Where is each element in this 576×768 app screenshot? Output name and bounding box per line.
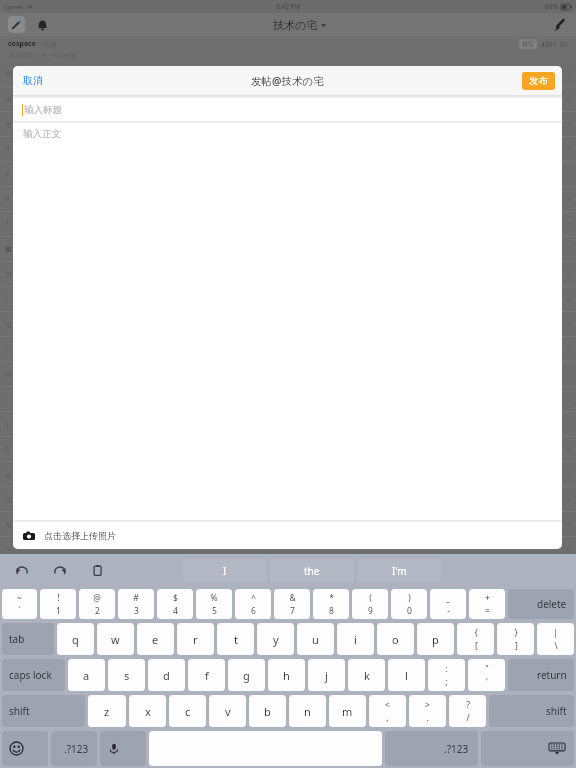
button[interactable]: .?123 [51, 731, 97, 766]
button[interactable]: Dictation [100, 731, 146, 766]
staticText: [ [475, 640, 478, 652]
button[interactable]: g [228, 659, 265, 691]
button[interactable]: .?123 [385, 731, 478, 766]
button[interactable]: d [148, 659, 185, 691]
staticText: " [485, 663, 489, 675]
button[interactable]: _ [430, 589, 466, 619]
staticText: caps lock [9, 668, 52, 682]
button[interactable]: < [369, 695, 406, 727]
button[interactable]: I'm [357, 559, 441, 582]
button[interactable]: Compose [548, 15, 568, 35]
button[interactable]: delete [508, 589, 574, 619]
button[interactable]: 输入标题 [13, 98, 562, 121]
button[interactable]: u [297, 623, 334, 655]
button[interactable]: v [209, 695, 246, 727]
button[interactable]: @ [79, 589, 115, 619]
staticText: v [225, 704, 231, 719]
button[interactable]: $ [157, 589, 193, 619]
staticText: ] [515, 640, 518, 652]
button[interactable]: Undo [12, 561, 32, 581]
button[interactable]: ! [40, 589, 76, 619]
button[interactable]: > [409, 695, 446, 727]
button[interactable]: caps lock [2, 659, 65, 691]
staticText: # [133, 592, 139, 604]
button[interactable]: s [108, 659, 145, 691]
staticText: < [385, 699, 390, 711]
button[interactable]: t [217, 623, 254, 655]
button[interactable]: w [97, 623, 134, 655]
button[interactable]: return [508, 659, 574, 691]
button[interactable]: # [118, 589, 154, 619]
button[interactable]: tab [2, 623, 54, 655]
button[interactable]: Redo [50, 561, 70, 581]
staticText: 66% [545, 2, 558, 11]
staticText: 4 [5, 169, 10, 179]
button[interactable]: n [289, 695, 326, 727]
staticText: ; [445, 676, 448, 688]
button[interactable]: o [377, 623, 414, 655]
button[interactable]: b [249, 695, 286, 727]
button[interactable]: h [268, 659, 305, 691]
button[interactable]: i [337, 623, 374, 655]
button[interactable]: % [196, 589, 232, 619]
button[interactable]: Profile [8, 16, 25, 33]
button[interactable]: shift [2, 695, 85, 727]
button[interactable]: : [428, 659, 465, 691]
button[interactable]: the [270, 559, 354, 582]
staticText: + [485, 592, 490, 604]
button[interactable]: " [468, 659, 505, 691]
staticText: b [264, 704, 271, 719]
button[interactable]: * [313, 589, 349, 619]
button[interactable]: Paste [88, 561, 108, 581]
button[interactable]: ~ [2, 589, 37, 619]
button[interactable]: f [188, 659, 225, 691]
staticText: i [354, 632, 357, 647]
staticText: } [514, 627, 518, 639]
button[interactable]: ^ [235, 589, 271, 619]
button[interactable]: x [129, 695, 166, 727]
staticText: .?123 [444, 742, 469, 756]
button[interactable]: q [57, 623, 94, 655]
button[interactable]: 取消 [21, 72, 45, 89]
button[interactable]: p [417, 623, 454, 655]
staticText: , [386, 712, 389, 724]
staticText: g [243, 668, 250, 683]
button[interactable]: | [537, 623, 574, 655]
button[interactable]: r [177, 623, 214, 655]
button[interactable]: l [388, 659, 425, 691]
button[interactable]: { [457, 623, 494, 655]
button[interactable]: ) [391, 589, 427, 619]
button[interactable]: 发布 [522, 72, 555, 90]
staticText: ' [486, 676, 488, 688]
button[interactable]: ? [449, 695, 486, 727]
button[interactable]: + [469, 589, 505, 619]
button[interactable]: ( [352, 589, 388, 619]
button[interactable]: a [68, 659, 105, 691]
button[interactable]: I [183, 559, 267, 582]
button[interactable]: & [274, 589, 310, 619]
staticText: 8 [329, 605, 334, 617]
button[interactable]: m [329, 695, 366, 727]
button[interactable]: k [348, 659, 385, 691]
staticText: S [5, 444, 9, 454]
button[interactable]: } [497, 623, 534, 655]
button[interactable]: 点击选择上传照片 [13, 522, 562, 549]
button[interactable]: e [137, 623, 174, 655]
staticText: z [104, 704, 110, 719]
button[interactable]: Hide keyboard [481, 731, 574, 766]
button[interactable]: z [88, 695, 126, 727]
button[interactable]: Emoji [2, 731, 48, 766]
button[interactable]: y [257, 623, 294, 655]
staticText: shift [546, 704, 567, 718]
staticText: f [205, 668, 209, 683]
button[interactable]: Notifications [33, 16, 51, 34]
button[interactable]: shift [489, 695, 574, 727]
staticText: _ [446, 592, 450, 604]
button[interactable]: j [308, 659, 345, 691]
button[interactable]: c [169, 695, 206, 727]
staticText: d [163, 668, 170, 683]
